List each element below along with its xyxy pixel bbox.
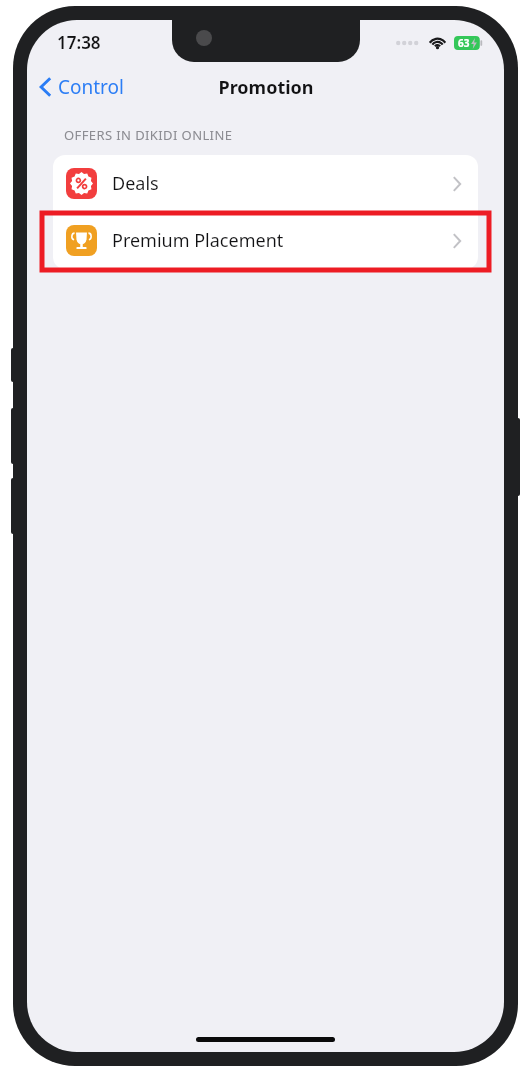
staticText: 17:38 bbox=[57, 31, 101, 54]
staticText: Control bbox=[58, 74, 124, 100]
button[interactable]: Deals bbox=[53, 155, 478, 212]
staticText: 63 bbox=[458, 36, 470, 50]
button[interactable]: Premium Placement bbox=[53, 212, 478, 269]
staticText: Deals bbox=[112, 171, 159, 196]
staticText: OFFERS IN DIKIDI ONLINE bbox=[64, 126, 233, 144]
button[interactable]: Control bbox=[27, 68, 134, 106]
staticText: Promotion bbox=[218, 75, 314, 100]
staticText: Premium Placement bbox=[112, 228, 284, 253]
